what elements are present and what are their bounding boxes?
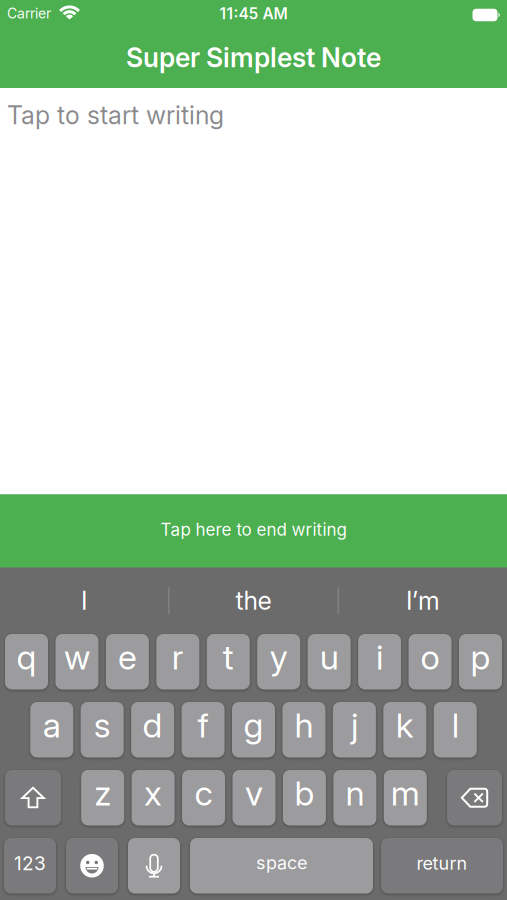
button[interactable]: u [308, 634, 351, 689]
staticText: Tap to start writing [7, 100, 224, 130]
staticText: r [172, 637, 184, 678]
staticText: c [195, 773, 213, 814]
staticText: I [81, 586, 87, 616]
button[interactable]: space [190, 838, 373, 893]
staticText: w [64, 637, 90, 678]
staticText: 123 [14, 852, 46, 875]
staticText: o [420, 637, 439, 678]
staticText: h [294, 705, 313, 746]
button[interactable]: e [106, 634, 149, 689]
staticText: Tap here to end writing [160, 519, 346, 540]
staticText: Carrier [7, 5, 51, 22]
button[interactable]: q [5, 634, 48, 689]
button[interactable]: b [283, 770, 326, 825]
staticText: v [245, 773, 263, 814]
button[interactable]: m [384, 770, 427, 825]
staticText: q [16, 637, 36, 678]
button[interactable]: k [383, 702, 426, 757]
button[interactable]: j [333, 702, 376, 757]
button[interactable]: Delete [447, 770, 502, 825]
button[interactable]: x [132, 770, 175, 825]
staticText: g [243, 705, 263, 746]
staticText: b [294, 773, 314, 814]
staticText: j [351, 705, 358, 746]
button[interactable]: c [182, 770, 225, 825]
button[interactable]: a [30, 702, 73, 757]
button[interactable]: g [232, 702, 275, 757]
button[interactable]: Dictation [128, 838, 180, 893]
staticText: u [320, 637, 339, 678]
staticText: a [43, 705, 61, 746]
button[interactable]: Numbers [4, 838, 56, 893]
staticText: n [345, 773, 364, 814]
button[interactable]: f [182, 702, 225, 757]
staticText: the [235, 586, 271, 616]
button[interactable]: I [0, 567, 168, 634]
button[interactable]: y [257, 634, 300, 689]
staticText: 11:45 AM [219, 4, 287, 23]
staticText: return [416, 852, 467, 874]
staticText: s [94, 705, 111, 746]
button[interactable]: the [169, 567, 337, 634]
staticText: m [391, 773, 420, 814]
staticText: k [396, 705, 414, 746]
staticText: space [256, 852, 307, 874]
button[interactable]: l [434, 702, 477, 757]
button[interactable]: n [333, 770, 376, 825]
button[interactable]: d [131, 702, 174, 757]
button[interactable]: s [81, 702, 124, 757]
staticText: I’m [406, 586, 440, 616]
staticText: Super Simplest Note [126, 41, 381, 74]
button[interactable]: t [207, 634, 250, 689]
button[interactable]: I’m [339, 567, 507, 634]
staticText: x [144, 773, 162, 814]
staticText: l [452, 705, 459, 746]
button[interactable]: Shift [5, 770, 61, 825]
button[interactable]: p [459, 634, 502, 689]
staticText: e [118, 637, 137, 678]
staticText: i [376, 637, 383, 678]
button[interactable]: return [381, 838, 503, 893]
staticText: t [223, 637, 234, 678]
staticText: f [198, 705, 209, 746]
button[interactable]: z [81, 770, 124, 825]
staticText: z [94, 773, 111, 814]
button[interactable]: v [232, 770, 275, 825]
button[interactable]: o [408, 634, 451, 689]
button[interactable]: h [282, 702, 325, 757]
button[interactable]: Tap here to end writing [0, 494, 507, 567]
staticText: p [470, 637, 490, 678]
staticText: y [270, 637, 288, 678]
button[interactable]: Emoji [66, 838, 118, 893]
button[interactable]: i [358, 634, 401, 689]
staticText: d [143, 705, 163, 746]
button[interactable]: r [156, 634, 199, 689]
button[interactable]: w [55, 634, 98, 689]
button[interactable]: Tap to start writing [0, 88, 507, 494]
